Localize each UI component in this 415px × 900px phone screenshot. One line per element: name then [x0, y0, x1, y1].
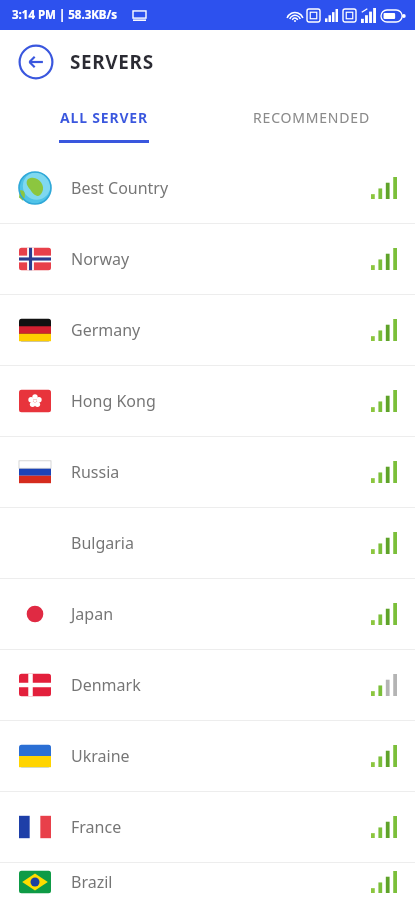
staticText: 3:14 PM | 58.3KB/s — [12, 7, 118, 23]
button[interactable]: Bulgaria — [0, 508, 415, 578]
staticText: Ukraine — [71, 745, 130, 767]
staticText: SERVERS — [70, 49, 154, 75]
staticText: France — [71, 816, 122, 838]
button[interactable]: Japan — [0, 579, 415, 649]
staticText: Russia — [71, 461, 120, 483]
staticText: Hong Kong — [71, 390, 156, 412]
staticText: Germany — [71, 319, 141, 341]
staticText: Best Country — [71, 177, 169, 199]
button[interactable]: Best Country — [0, 153, 415, 223]
staticText: Norway — [71, 248, 130, 270]
button[interactable]: Hong Kong — [0, 366, 415, 436]
button[interactable]: Ukraine — [0, 721, 415, 791]
button[interactable]: Back — [18, 44, 54, 80]
staticText: Japan — [71, 603, 114, 625]
staticText: Denmark — [71, 674, 141, 696]
button[interactable]: Brazil — [0, 863, 415, 900]
button[interactable]: Germany — [0, 295, 415, 365]
staticText: Brazil — [71, 871, 113, 893]
button[interactable]: Denmark — [0, 650, 415, 720]
button[interactable]: France — [0, 792, 415, 862]
button[interactable]: ALL SERVER — [0, 94, 207, 140]
staticText: RECOMMENDED — [253, 108, 370, 127]
button[interactable]: Norway — [0, 224, 415, 294]
staticText: Bulgaria — [71, 532, 134, 554]
button[interactable]: Russia — [0, 437, 415, 507]
staticText: ALL SERVER — [60, 108, 148, 127]
button[interactable]: RECOMMENDED — [207, 94, 415, 140]
